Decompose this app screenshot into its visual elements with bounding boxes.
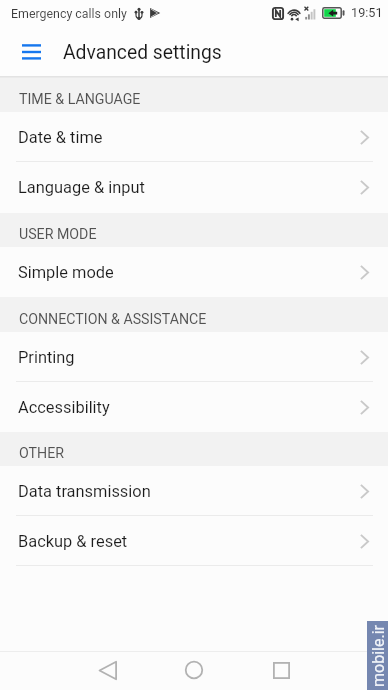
staticText: Simple mode (18, 263, 114, 282)
button[interactable]: Language & input (0, 162, 388, 213)
button[interactable]: Date & time (0, 112, 388, 162)
button[interactable]: Accessibility (0, 382, 388, 432)
staticText: Date & time (18, 128, 103, 147)
button[interactable]: Printing (0, 332, 388, 382)
button[interactable]: Data transmission (0, 466, 388, 516)
button[interactable]: Home (170, 652, 218, 688)
staticText: Backup & reset (18, 532, 128, 551)
button[interactable]: Simple mode (0, 247, 388, 297)
staticText: Data transmission (18, 482, 151, 501)
staticText: Language & input (18, 178, 145, 197)
button[interactable]: Menu (6, 27, 54, 76)
staticText: USER MODE (19, 226, 97, 243)
staticText: mobile.ir (369, 625, 388, 687)
staticText: Printing (18, 348, 75, 367)
staticText: 19:51 (351, 5, 383, 20)
button[interactable]: Backup & reset (0, 516, 388, 566)
button[interactable]: Back (84, 652, 132, 688)
button[interactable]: Recents (257, 652, 305, 688)
staticText: Accessibility (18, 398, 110, 417)
staticText: Advanced settings (63, 41, 222, 64)
staticText: TIME & LANGUAGE (19, 91, 141, 108)
staticText: Emergency calls only (11, 6, 127, 21)
staticText: CONNECTION & ASSISTANCE (19, 311, 207, 328)
staticText: OTHER (19, 445, 64, 462)
